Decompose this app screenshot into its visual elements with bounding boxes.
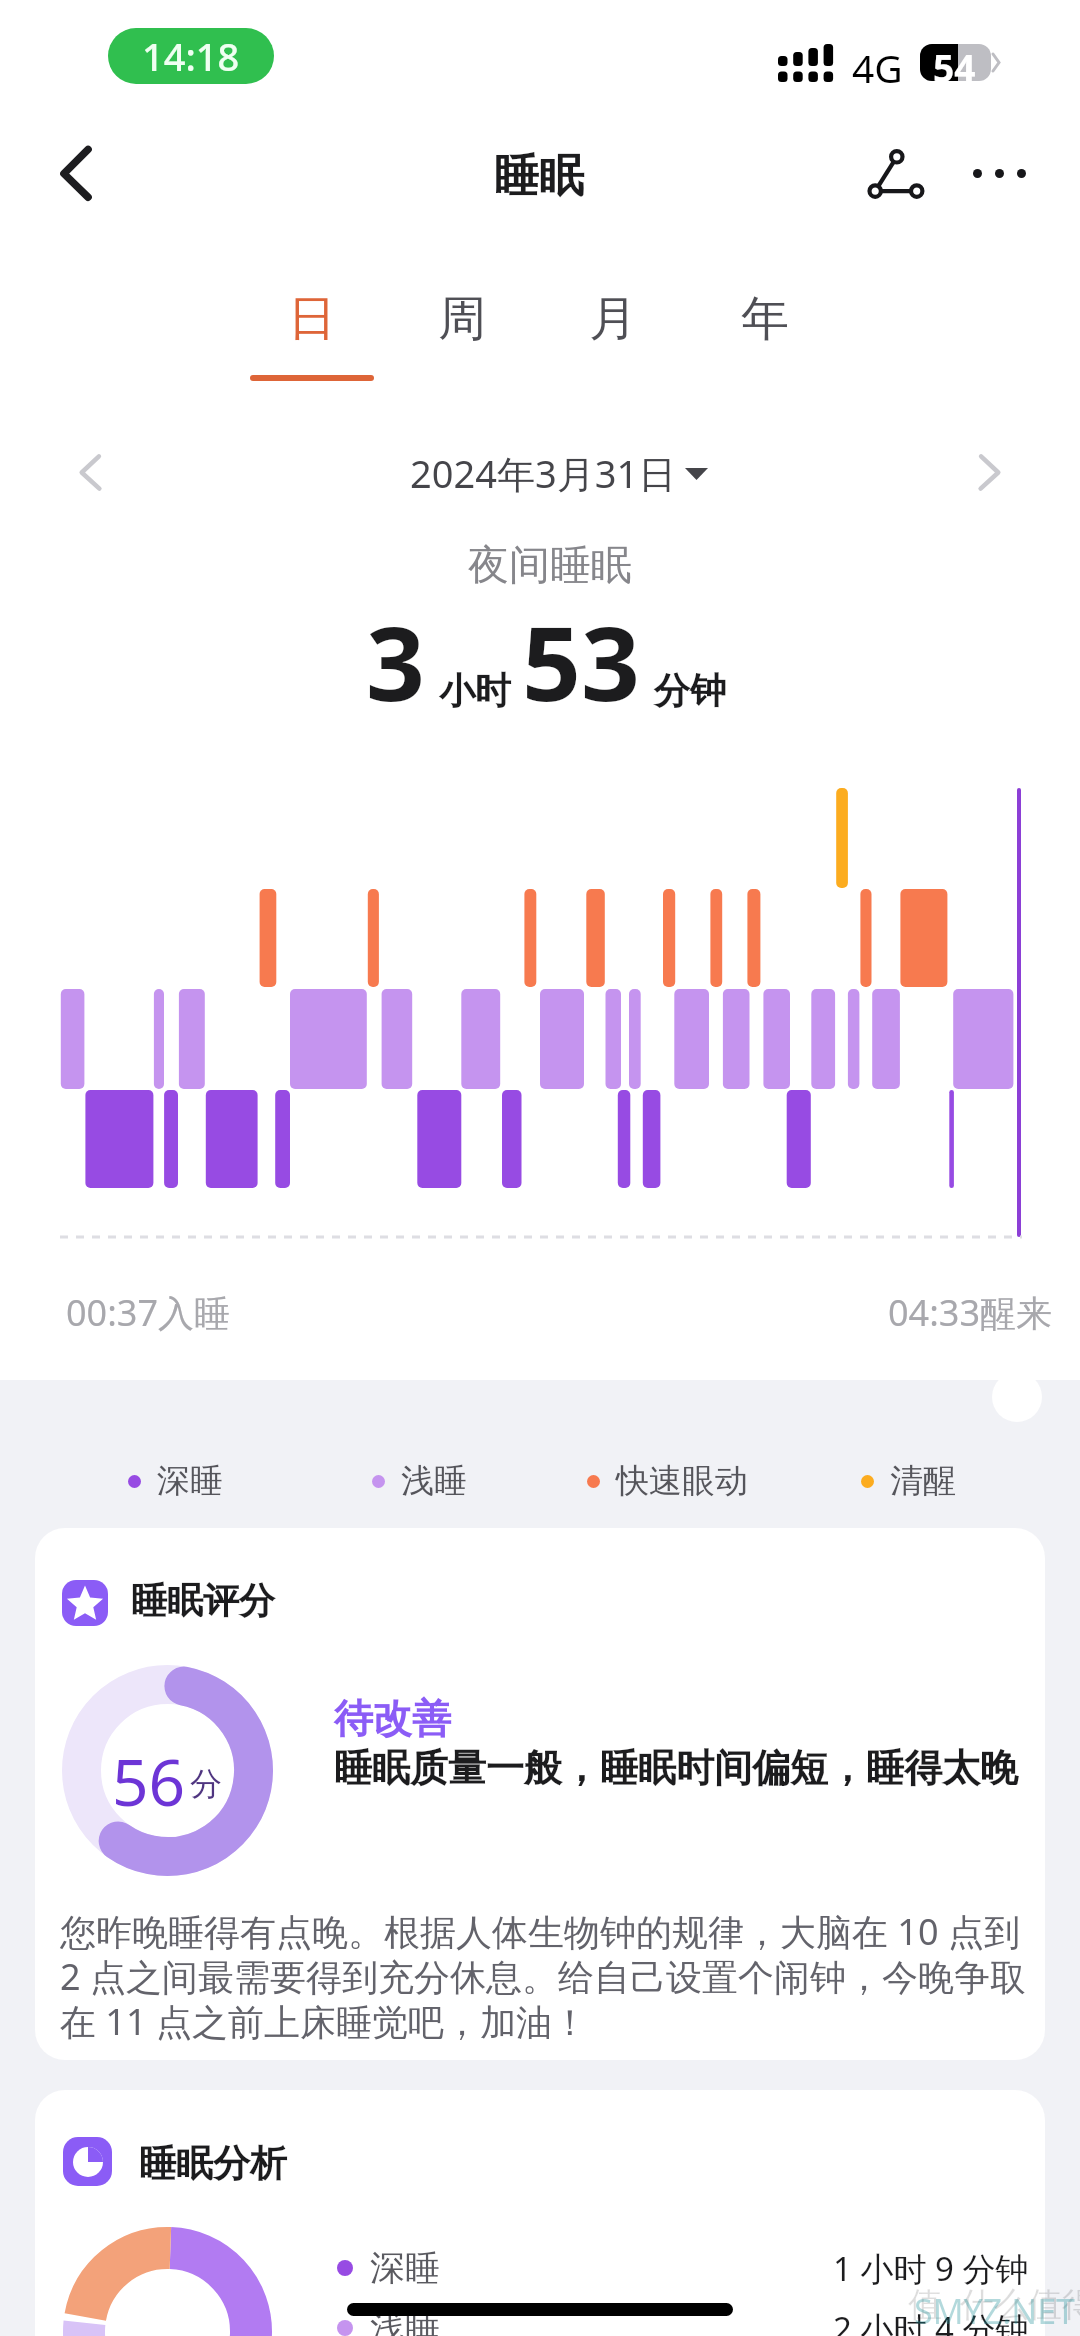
staticText: 2024年3月31日 [410,447,677,499]
staticText: 睡眠 [494,148,584,205]
staticText: 分 [190,1764,222,1804]
button[interactable]: 月 [551,275,675,395]
staticText: 53 [522,591,640,721]
staticText: 深睡 [157,1460,223,1502]
staticText: SMYZ.NET [914,2288,1075,2334]
staticText: 周 [438,289,486,349]
staticText: 日 [288,289,336,349]
staticText: 睡眠分析 [139,2140,287,2187]
button[interactable]: Next day [944,436,1020,512]
staticText: 值 什么值得买 [908,2280,1080,2326]
staticText: 2 小时 4 分钟 [833,2306,1029,2336]
button[interactable]: 浅睡 [337,2301,1029,2336]
button[interactable]: 清醒 [861,1457,956,1505]
button[interactable]: 2024年3月31日 [400,440,710,502]
staticText: 浅睡 [401,1460,467,1502]
staticText: 夜间睡眠 [468,540,632,592]
staticText: 待改善 [334,1694,451,1743]
button[interactable]: 快速眼动 [587,1457,748,1505]
staticText: 56 [112,1738,186,1825]
staticText: 月 [589,289,637,349]
staticText: 清醒 [890,1460,956,1502]
button[interactable]: 睡眠分析 [35,2090,1045,2336]
staticText: 1 小时 9 分钟 [833,2246,1029,2291]
button[interactable]: 睡眠评分 [35,1528,1045,2060]
button[interactable]: More options [952,128,1044,220]
staticText: 00:37入睡 [66,1288,231,1337]
staticText: 3 [366,591,425,721]
staticText: 睡眠评分 [131,1578,275,1623]
staticText: 分钟 [654,668,726,713]
button[interactable]: 深睡 [128,1457,223,1505]
button[interactable]: 年 [703,275,827,395]
staticText: 快速眼动 [616,1460,748,1502]
button[interactable]: 周 [400,275,524,395]
staticText: 04:33醒来 [888,1288,1053,1337]
button[interactable]: 深睡 [337,2241,1029,2295]
staticText: 4G [852,41,903,94]
staticText: 14:18 [142,30,240,82]
staticText: 睡眠质量一般，睡眠时间偏短，睡得太晚 [334,1744,1018,1792]
button[interactable]: Back [36,128,132,224]
staticText: 浅睡 [370,2306,440,2336]
staticText: 54 [933,42,976,92]
button[interactable]: Share [852,128,940,216]
staticText: 您昨晚睡得有点晚。根据人体生物钟的规律，大脑在 10 点到 2 点之间最需要得到… [60,1907,1032,2045]
button[interactable]: Previous day [60,436,136,512]
button[interactable]: 日 [250,275,374,395]
staticText: 年 [741,289,789,349]
staticText: 小时 [439,668,511,713]
staticText: 深睡 [370,2246,440,2290]
button[interactable]: 浅睡 [372,1457,467,1505]
